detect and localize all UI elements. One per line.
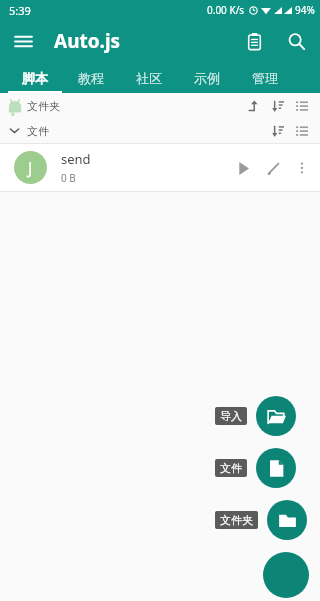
staticText: 0 B: [61, 171, 76, 185]
staticText: 教程: [78, 70, 104, 86]
staticText: J: [28, 157, 33, 179]
button[interactable]: 教程: [62, 62, 120, 93]
button[interactable]: Search: [278, 23, 314, 59]
staticText: 管理: [252, 70, 278, 86]
button[interactable]: View mode: [290, 94, 314, 118]
staticText: Auto.js: [54, 28, 121, 54]
staticText: 文件夹: [27, 99, 60, 113]
staticText: 示例: [194, 70, 220, 86]
staticText: 0.00 K/s: [207, 3, 245, 17]
button[interactable]: Import: [215, 396, 296, 436]
staticText: send: [61, 150, 91, 168]
staticText: 94%: [295, 3, 315, 17]
button[interactable]: Log: [236, 23, 272, 59]
staticText: 社区: [136, 70, 162, 86]
button[interactable]: Sort: [266, 119, 290, 143]
staticText: 文件夹: [220, 513, 253, 527]
button[interactable]: 示例: [178, 62, 236, 93]
button[interactable]: View mode: [290, 119, 314, 143]
staticText: 5:39: [9, 3, 31, 18]
button[interactable]: New file: [215, 448, 296, 488]
button[interactable]: Move up: [242, 94, 266, 118]
button[interactable]: Edit: [258, 153, 288, 183]
staticText: 文件: [220, 461, 242, 475]
button[interactable]: Add: [263, 552, 309, 598]
button[interactable]: Menu: [6, 24, 40, 58]
button[interactable]: J: [0, 144, 320, 191]
button[interactable]: 管理: [236, 62, 294, 93]
staticText: 脚本: [22, 70, 48, 86]
button[interactable]: 社区: [120, 62, 178, 93]
button[interactable]: New folder: [215, 500, 307, 540]
button[interactable]: Sort: [266, 94, 290, 118]
button[interactable]: 脚本: [8, 62, 62, 93]
staticText: 文件: [27, 124, 49, 138]
button[interactable]: More options: [288, 154, 316, 182]
button[interactable]: Run: [228, 153, 258, 183]
staticText: 导入: [220, 409, 242, 423]
